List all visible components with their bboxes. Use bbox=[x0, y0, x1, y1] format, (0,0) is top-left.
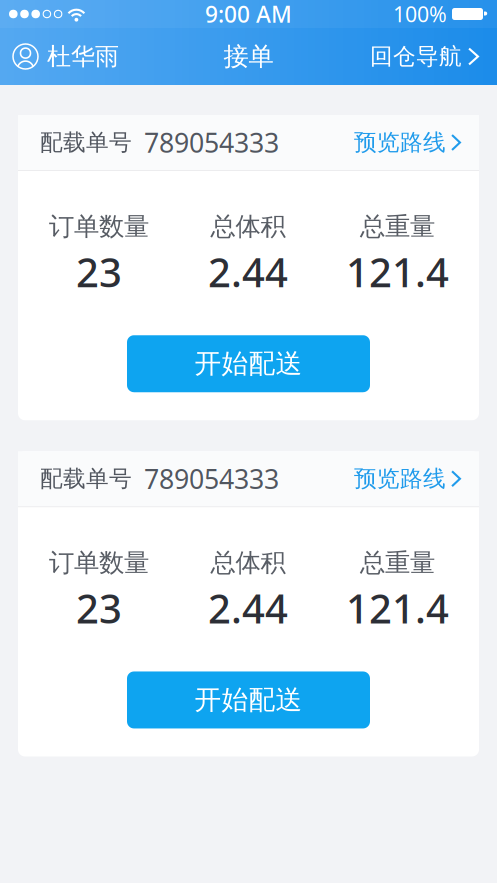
staticText: 预览路线 bbox=[354, 129, 446, 156]
staticText: 开始配送 bbox=[194, 684, 302, 716]
staticText: 预览路线 bbox=[354, 465, 446, 493]
staticText: 9:00 AM bbox=[205, 0, 292, 29]
button[interactable]: 杜华雨 bbox=[0, 42, 119, 71]
staticText: 开始配送 bbox=[194, 347, 302, 380]
staticText: 23 bbox=[76, 245, 122, 298]
staticText: 总体积 bbox=[210, 211, 285, 242]
staticText: 杜华雨 bbox=[47, 42, 119, 71]
staticText: 配载单号 bbox=[40, 129, 132, 156]
staticText: 121.4 bbox=[346, 581, 449, 634]
staticText: 回仓导航 bbox=[370, 43, 462, 70]
staticText: 789054333 bbox=[144, 461, 279, 496]
staticText: 订单数量 bbox=[49, 547, 149, 578]
staticText: 2.44 bbox=[208, 581, 288, 634]
staticText: 总重量 bbox=[360, 547, 435, 578]
staticText: 2.44 bbox=[208, 245, 288, 298]
staticText: 订单数量 bbox=[49, 211, 149, 242]
staticText: 121.4 bbox=[346, 245, 449, 298]
staticText: 接单 bbox=[223, 41, 273, 72]
button[interactable]: 预览路线 bbox=[354, 129, 461, 156]
button[interactable]: 预览路线 bbox=[354, 465, 461, 493]
staticText: 总重量 bbox=[360, 211, 435, 242]
staticText: 789054333 bbox=[144, 125, 279, 160]
button[interactable]: 回仓导航 bbox=[370, 43, 497, 70]
button[interactable]: 开始配送 bbox=[127, 335, 370, 392]
staticText: 23 bbox=[76, 581, 122, 634]
staticText: 总体积 bbox=[210, 547, 285, 578]
staticText: 100% bbox=[393, 0, 447, 28]
button[interactable]: 开始配送 bbox=[127, 671, 370, 728]
staticText: 配载单号 bbox=[40, 465, 132, 493]
